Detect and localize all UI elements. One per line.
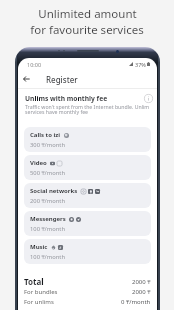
staticText: for favourite services xyxy=(30,22,144,38)
staticText: Traffic won't spent from the Internet bu… xyxy=(25,103,153,116)
staticText: Social networks xyxy=(30,187,78,195)
staticText: 2000 ₸ xyxy=(132,278,151,286)
staticText: Register xyxy=(46,74,78,85)
button[interactable]: Info xyxy=(144,94,153,103)
button[interactable]: Back xyxy=(18,70,35,88)
button[interactable]: Calls to izi xyxy=(24,127,151,152)
button[interactable]: Music xyxy=(24,239,151,264)
staticText: For bundles xyxy=(24,288,58,296)
staticText: 200 ₸/month xyxy=(30,197,65,205)
staticText: Video xyxy=(30,159,47,167)
staticText: 100 ₸/month xyxy=(30,253,65,261)
staticText: Unlims with monthly fee xyxy=(25,94,108,103)
staticText: For unlims xyxy=(24,298,54,306)
staticText: Music xyxy=(30,243,48,251)
staticText: Unlimited amount xyxy=(38,6,137,22)
button[interactable]: Video xyxy=(24,155,151,180)
staticText: Messengers xyxy=(30,215,66,223)
staticText: 37% xyxy=(135,61,146,68)
button[interactable]: Social networks xyxy=(24,183,151,208)
staticText: Calls to izi xyxy=(30,131,61,139)
staticText: Total xyxy=(24,276,44,287)
staticText: 0 ₸/month xyxy=(121,298,151,306)
staticText: 2000 ₸ xyxy=(132,288,151,296)
staticText: 300 ₸/month xyxy=(30,141,65,149)
staticText: 100 ₸/month xyxy=(30,225,65,233)
staticText: 500 ₸/month xyxy=(30,169,65,177)
button[interactable]: Messengers xyxy=(24,211,151,236)
staticText: 10:00 xyxy=(27,61,42,68)
